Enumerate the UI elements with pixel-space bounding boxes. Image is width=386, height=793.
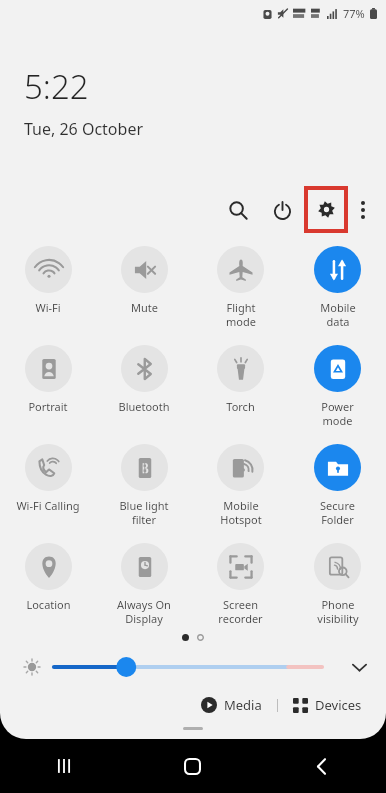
button[interactable]: Bluetooth xyxy=(96,343,192,414)
staticText: Mobile data xyxy=(320,300,356,329)
staticText: Flight mode xyxy=(226,300,256,329)
button[interactable]: Screen recorder xyxy=(192,541,289,626)
button[interactable]: Power mode xyxy=(289,343,386,428)
button[interactable]: Media xyxy=(195,692,268,718)
button[interactable]: Brightness xyxy=(52,654,328,680)
staticText: Power mode xyxy=(321,399,354,428)
button[interactable]: More options xyxy=(348,188,378,232)
button[interactable]: Mute xyxy=(96,244,192,315)
button[interactable]: Torch xyxy=(192,343,289,414)
button[interactable]: Wi-Fi xyxy=(0,244,96,315)
button[interactable]: Mobile Hotspot xyxy=(192,442,289,527)
staticText: Always On Display xyxy=(117,597,171,626)
button[interactable]: Phone visibility xyxy=(289,541,386,626)
button[interactable]: Mobile data xyxy=(289,244,386,329)
staticText: Bluetooth xyxy=(118,399,170,414)
staticText: Mute xyxy=(131,300,158,315)
staticText: 5:22 xyxy=(24,64,89,109)
button[interactable]: Back xyxy=(257,739,386,793)
staticText: Secure Folder xyxy=(320,498,355,527)
staticText: Wi-Fi xyxy=(35,300,61,315)
staticText: Phone visibility xyxy=(317,597,359,626)
staticText: Screen recorder xyxy=(218,597,263,626)
button[interactable]: Flight mode xyxy=(192,244,289,329)
button[interactable]: Always On Display xyxy=(96,541,192,626)
staticText: Media xyxy=(224,696,262,714)
button[interactable]: Settings xyxy=(308,190,344,229)
staticText: Devices xyxy=(315,696,362,714)
button[interactable]: Recent apps xyxy=(0,739,128,793)
staticText: Blue light filter xyxy=(119,498,169,527)
button[interactable]: Expand brightness settings xyxy=(342,652,376,682)
staticText: Tue, 26 October xyxy=(24,118,144,140)
staticText: Mobile Hotspot xyxy=(220,498,262,527)
button[interactable]: Search xyxy=(216,188,260,232)
button[interactable]: Devices xyxy=(287,692,368,718)
button[interactable]: Blue light filter xyxy=(96,442,192,527)
staticText: Wi-Fi Calling xyxy=(16,498,80,513)
button[interactable]: Location xyxy=(0,541,96,612)
button[interactable]: Home xyxy=(128,739,257,793)
button[interactable]: Portrait xyxy=(0,343,96,414)
staticText: Portrait xyxy=(28,399,68,414)
staticText: Torch xyxy=(226,399,255,414)
button[interactable]: Secure Folder xyxy=(289,442,386,527)
staticText: Location xyxy=(26,597,71,612)
button[interactable]: Power xyxy=(260,188,304,232)
button[interactable]: Wi-Fi Calling xyxy=(0,442,96,513)
staticText: 77% xyxy=(343,6,365,21)
